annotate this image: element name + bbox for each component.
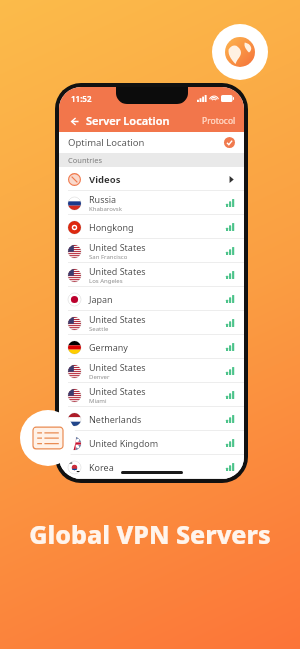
staticText: United States [89, 313, 146, 325]
button[interactable]: United States [59, 239, 244, 263]
staticText: Russia [89, 193, 117, 205]
staticText: Japan [89, 293, 113, 305]
button[interactable]: Optimal Location [59, 132, 244, 153]
staticText: Los Angeles [89, 277, 123, 285]
button[interactable]: Protocol [202, 115, 236, 127]
button[interactable]: Hongkong [59, 215, 244, 239]
staticText: Protocol [202, 115, 236, 127]
button[interactable]: United Kingdom [59, 431, 244, 455]
button[interactable]: United States [59, 311, 244, 335]
staticText: Miami [89, 397, 107, 405]
button[interactable]: Back [65, 112, 83, 130]
staticText: 11:52 [71, 93, 92, 104]
button[interactable]: Korea [59, 455, 244, 479]
staticText: United States [89, 241, 146, 253]
button[interactable]: Japan [59, 287, 244, 311]
staticText: Germany [89, 341, 128, 353]
staticText: United Kingdom [89, 437, 159, 449]
staticText: Seattle [89, 325, 109, 333]
button[interactable]: Netherlands [59, 407, 244, 431]
staticText: United States [89, 361, 146, 373]
button[interactable]: United States [59, 263, 244, 287]
button[interactable]: United States [59, 359, 244, 383]
staticText: Netherlands [89, 413, 142, 425]
button[interactable]: Videos [59, 167, 244, 191]
button[interactable]: United States [59, 383, 244, 407]
staticText: Countries [68, 155, 103, 165]
staticText: San Francisco [89, 253, 128, 261]
staticText: United States [89, 385, 146, 397]
button[interactable]: Germany [59, 335, 244, 359]
staticText: Global VPN Servers [0, 517, 300, 551]
staticText: Optimal Location [68, 136, 145, 149]
button[interactable]: Russia [59, 191, 244, 215]
staticText: United States [89, 265, 146, 277]
staticText: Server Location [86, 113, 170, 128]
staticText: Videos [89, 173, 121, 186]
button[interactable]: Global network [212, 24, 268, 80]
staticText: Khabarovsk [89, 205, 122, 213]
button[interactable]: Server list [20, 410, 76, 466]
staticText: Korea [89, 461, 114, 473]
staticText: Hongkong [89, 221, 134, 233]
staticText: Denver [89, 373, 110, 381]
